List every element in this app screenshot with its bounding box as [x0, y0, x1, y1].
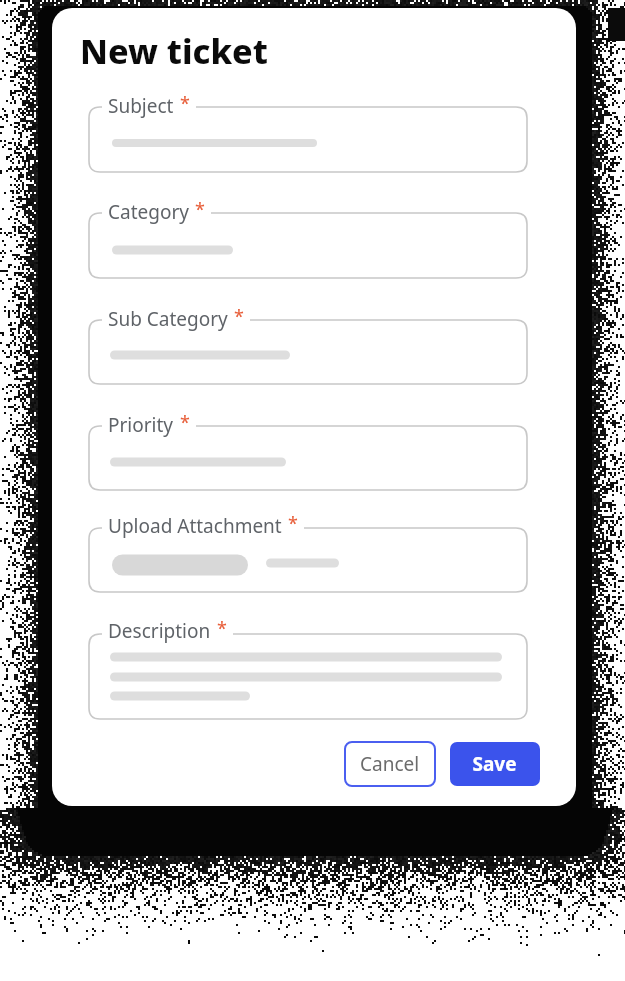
button[interactable]: Description — [89, 634, 527, 719]
button[interactable]: Upload Attachment — [89, 528, 527, 592]
button[interactable]: Subject — [89, 107, 527, 172]
button[interactable]: Category — [89, 213, 527, 278]
button[interactable]: Save — [450, 742, 540, 786]
button[interactable]: Cancel — [345, 742, 435, 786]
button[interactable]: Priority — [89, 426, 527, 490]
button[interactable]: Sub Category — [89, 320, 527, 384]
